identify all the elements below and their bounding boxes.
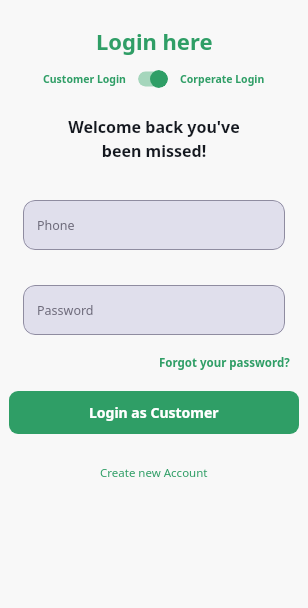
button[interactable]: Toggle login type (138, 70, 168, 88)
button[interactable]: Password (23, 285, 285, 335)
staticText: Phone (37, 217, 75, 234)
button[interactable]: Phone (23, 200, 285, 250)
button[interactable]: Corperate Login (178, 70, 267, 88)
staticText: Login here (96, 26, 213, 56)
staticText: Password (37, 302, 94, 319)
button[interactable]: Customer Login (41, 70, 128, 88)
button[interactable]: Login as Customer (9, 391, 299, 434)
staticText: Welcome back you've been missed! (0, 116, 308, 162)
staticText: Create new Account (100, 465, 208, 481)
button[interactable]: Create new Account (94, 462, 214, 484)
staticText: Customer Login (43, 72, 126, 86)
button[interactable]: Forgot your password? (157, 353, 292, 373)
staticText: Forgot your password? (159, 355, 290, 371)
staticText: Login as Customer (89, 403, 219, 422)
staticText: Corperate Login (180, 72, 265, 86)
